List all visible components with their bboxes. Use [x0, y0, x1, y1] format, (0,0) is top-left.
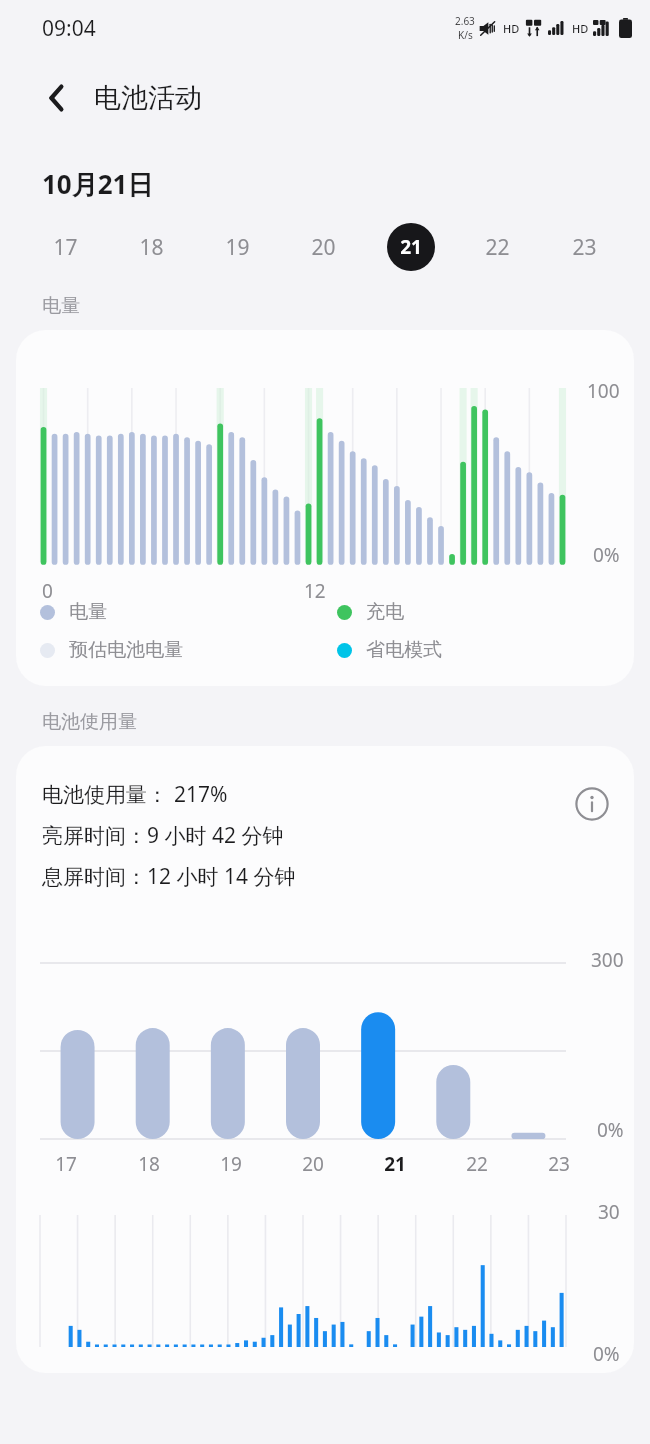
button[interactable]: 23: [541, 218, 628, 276]
button[interactable]: 22: [454, 218, 541, 276]
staticText: 0: [42, 578, 53, 604]
staticText: 19: [225, 233, 250, 262]
button[interactable]: Information: [568, 780, 616, 828]
button[interactable]: 23: [518, 1151, 600, 1177]
button[interactable]: 17: [22, 218, 108, 276]
button[interactable]: 19: [194, 218, 280, 276]
staticText: 22: [466, 1151, 488, 1177]
button[interactable]: Back: [34, 75, 80, 121]
button[interactable]: 22: [436, 1151, 518, 1177]
staticText: 18: [139, 233, 164, 262]
button[interactable]: 21: [354, 1151, 436, 1177]
staticText: 电池使用量：: [42, 782, 168, 808]
staticText: 21: [384, 1151, 406, 1177]
staticText: 19: [220, 1151, 242, 1177]
staticText: 300: [591, 947, 624, 973]
staticText: 18: [138, 1151, 160, 1177]
staticText: HD: [572, 21, 589, 36]
button[interactable]: 20: [272, 1151, 354, 1177]
staticText: 23: [548, 1151, 570, 1177]
staticText: 充电: [366, 600, 404, 624]
staticText: 0%: [593, 1341, 620, 1367]
staticText: 2.63: [455, 14, 475, 28]
button[interactable]: 18: [107, 1151, 190, 1177]
staticText: HD: [503, 21, 520, 36]
staticText: 20: [302, 1151, 324, 1177]
staticText: 217%: [174, 780, 228, 809]
staticText: 10月21日: [42, 166, 154, 202]
button[interactable]: 21: [367, 218, 454, 276]
staticText: 亮屏时间：9 小时 42 分钟: [42, 821, 284, 850]
button[interactable]: 18: [108, 218, 194, 276]
staticText: 电池使用量: [42, 710, 137, 734]
staticText: 息屏时间：12 小时 14 分钟: [42, 862, 296, 891]
button[interactable]: 17: [24, 1151, 107, 1177]
staticText: 20: [311, 233, 336, 262]
staticText: 22: [485, 233, 510, 262]
button[interactable]: 20: [280, 218, 367, 276]
staticText: 100: [587, 378, 620, 404]
staticText: 12: [304, 578, 326, 604]
staticText: 17: [55, 1151, 77, 1177]
staticText: 预估电池电量: [69, 638, 183, 662]
button[interactable]: 19: [190, 1151, 272, 1177]
staticText: 省电模式: [366, 638, 442, 662]
staticText: 0%: [593, 542, 620, 568]
staticText: 电量: [69, 600, 107, 624]
staticText: 0%: [597, 1117, 624, 1143]
staticText: 电量: [42, 294, 80, 318]
staticText: 电池活动: [94, 81, 202, 115]
staticText: 23: [572, 233, 597, 262]
staticText: 30: [598, 1199, 620, 1225]
staticText: 21: [400, 234, 422, 260]
staticText: 17: [53, 233, 78, 262]
staticText: K/s: [458, 28, 473, 42]
staticText: 09:04: [42, 14, 96, 43]
